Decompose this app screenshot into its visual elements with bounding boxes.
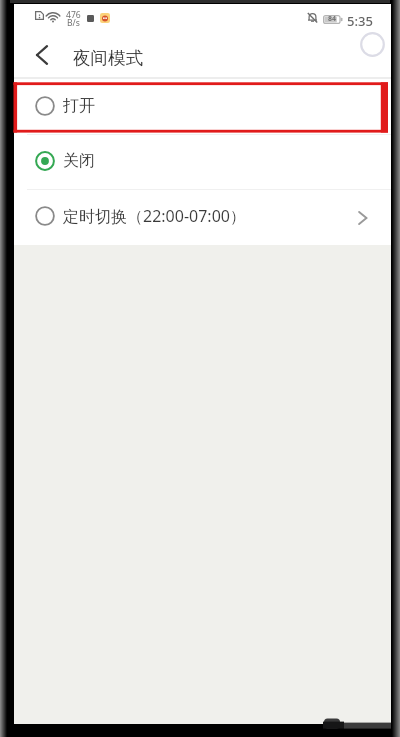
button[interactable]: 定时切换（22:00-07:00）: [14, 189, 391, 244]
button[interactable]: 打开: [14, 79, 391, 134]
staticText: 476: [66, 9, 81, 21]
staticText: B/s: [67, 17, 80, 29]
staticText: 定时切换（22:00-07:00）: [63, 205, 246, 227]
staticText: 关闭: [63, 151, 95, 171]
staticText: 5:35: [347, 12, 373, 30]
staticText: 打开: [63, 96, 95, 116]
button[interactable]: Account: [352, 24, 392, 64]
button[interactable]: 关闭: [14, 134, 391, 189]
staticText: 夜间模式: [73, 47, 143, 69]
button[interactable]: Back: [20, 33, 64, 77]
staticText: 84: [328, 14, 337, 24]
